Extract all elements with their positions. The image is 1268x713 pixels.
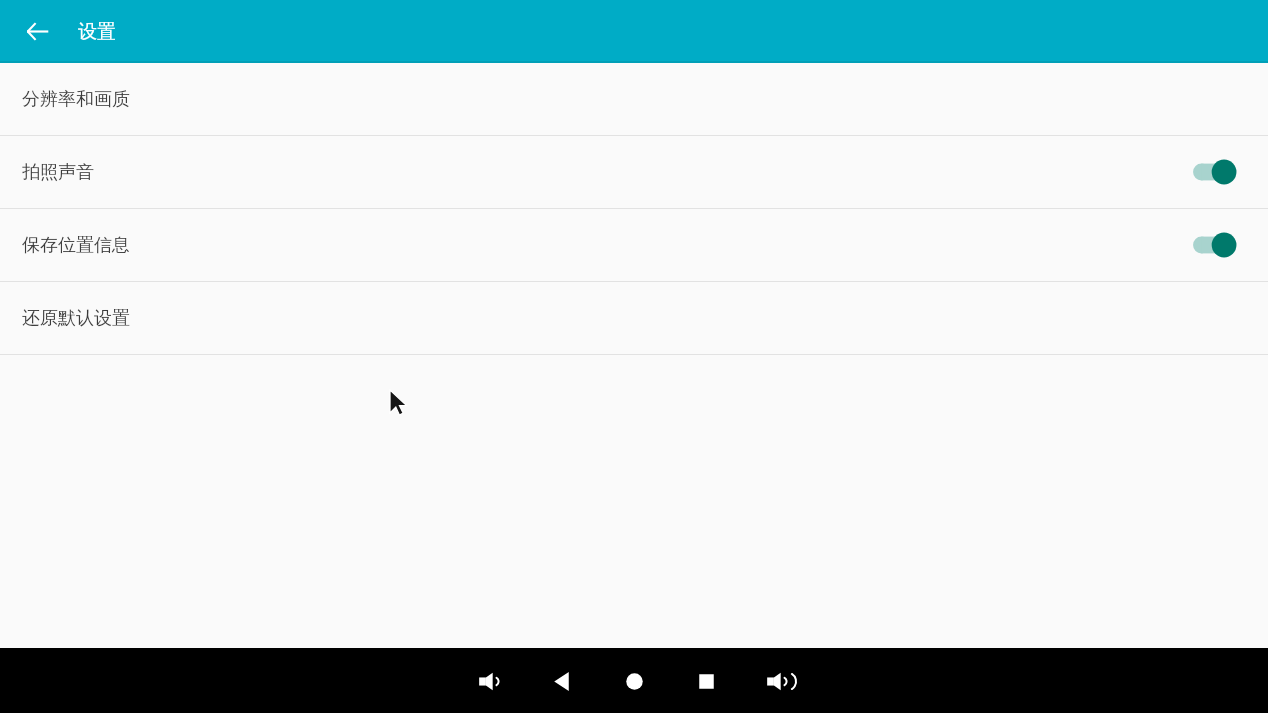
staticText: 还原默认设置 [22,307,130,330]
button[interactable]: Volume up [755,658,801,704]
button[interactable]: 还原默认设置 [0,282,1268,354]
staticText: 保存位置信息 [22,234,130,257]
button[interactable]: Toggle [1192,224,1246,266]
staticText: 分辨率和画质 [22,88,130,111]
staticText: 拍照声音 [22,161,94,184]
button[interactable]: Back [14,8,61,55]
button[interactable]: Home [611,658,657,704]
button[interactable]: Toggle [1192,151,1246,193]
button[interactable]: 分辨率和画质 [0,63,1268,135]
button[interactable]: 拍照声音 [0,136,1268,208]
staticText: 设置 [78,20,116,44]
button[interactable]: Back [539,658,585,704]
button[interactable]: 保存位置信息 [0,209,1268,281]
button[interactable]: Volume down [467,658,513,704]
button[interactable]: Recents [683,658,729,704]
